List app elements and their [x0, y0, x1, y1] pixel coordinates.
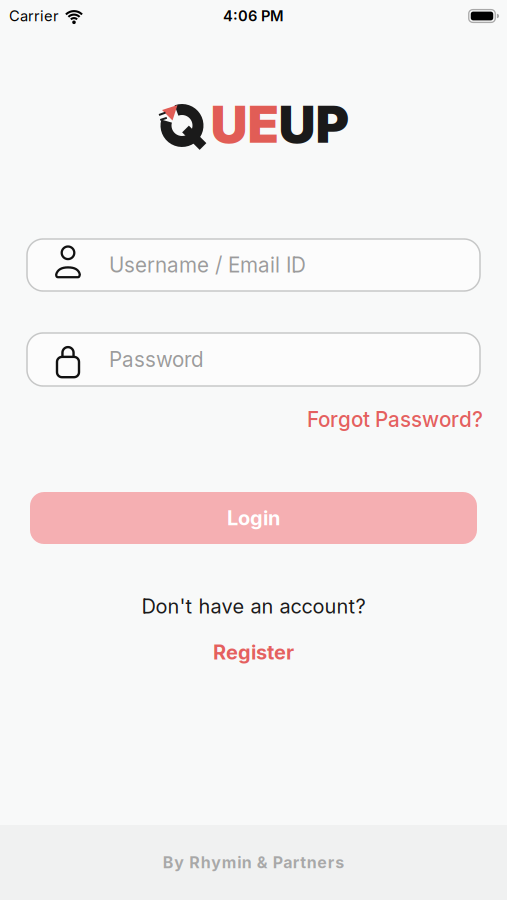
staticText: UP	[278, 93, 349, 155]
button[interactable]: Login	[0, 492, 507, 544]
button[interactable]: Register	[213, 640, 294, 664]
button[interactable]: Username / Email ID	[0, 239, 507, 291]
staticText: Register	[213, 640, 294, 664]
staticText: Login	[227, 506, 280, 530]
staticText: Carrier	[9, 7, 59, 25]
staticText: Forgot Password?	[307, 407, 483, 432]
staticText: Username / Email ID	[109, 252, 306, 277]
staticText: 4:06 PM	[223, 7, 284, 25]
staticText: UE	[210, 93, 278, 155]
staticText: Don't have an account?	[141, 594, 365, 618]
staticText: Password	[109, 347, 204, 372]
staticText: By Rhymin & Partners	[163, 853, 344, 872]
button[interactable]: Password	[0, 333, 507, 386]
button[interactable]: Forgot Password?	[307, 407, 483, 432]
